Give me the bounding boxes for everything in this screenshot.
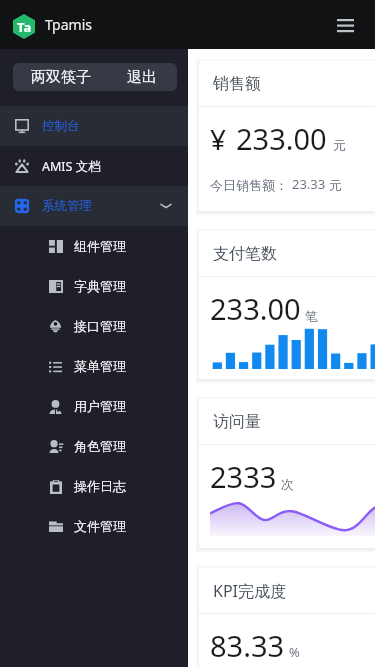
button[interactable]: 字典管理: [0, 266, 188, 306]
staticText: 系统管理: [42, 198, 92, 214]
button[interactable]: 组件管理: [0, 226, 188, 266]
button[interactable]: 角色管理: [0, 426, 188, 466]
button[interactable]: 菜单管理: [0, 346, 188, 386]
staticText: 笔: [305, 308, 318, 324]
staticText: 文件管理: [74, 518, 126, 534]
button[interactable]: 接口管理: [0, 306, 188, 346]
button[interactable]: Menu: [330, 10, 360, 40]
staticText: 组件管理: [74, 238, 126, 254]
staticText: ¥: [210, 120, 227, 158]
staticText: 角色管理: [74, 438, 126, 454]
button[interactable]: 两双筷子: [13, 63, 177, 91]
staticText: 销售额: [213, 74, 261, 94]
staticText: 用户管理: [74, 398, 126, 414]
staticText: 次: [281, 476, 294, 492]
staticText: 操作日志: [74, 478, 126, 494]
staticText: %: [289, 643, 300, 661]
staticText: 控制台: [42, 118, 80, 134]
button[interactable]: AMIS 文档: [0, 146, 188, 186]
staticText: Ta: [17, 18, 32, 36]
button[interactable]: 文件管理: [0, 506, 188, 546]
staticText: 元: [333, 137, 346, 153]
staticText: 字典管理: [74, 278, 126, 294]
staticText: 支付笔数: [213, 244, 277, 264]
staticText: 233.00: [236, 119, 327, 158]
staticText: 菜单管理: [74, 358, 126, 374]
staticText: 两双筷子: [31, 68, 91, 87]
button[interactable]: 操作日志: [0, 466, 188, 506]
button[interactable]: 用户管理: [0, 386, 188, 426]
staticText: AMIS 文档: [42, 158, 101, 175]
staticText: 今日销售额：: [210, 177, 288, 193]
staticText: 接口管理: [74, 318, 126, 334]
staticText: 退出: [127, 68, 157, 87]
staticText: 233.00: [210, 289, 301, 328]
staticText: 83.33: [210, 626, 285, 665]
staticText: 访问量: [213, 412, 261, 432]
staticText: 23.33: [292, 175, 326, 193]
staticText: KPI完成度: [213, 580, 287, 602]
button[interactable]: 控制台: [0, 106, 188, 146]
staticText: 元: [329, 177, 342, 193]
button[interactable]: 系统管理: [0, 186, 188, 226]
staticText: 2333: [210, 457, 277, 496]
staticText: Tpamis: [45, 15, 92, 34]
